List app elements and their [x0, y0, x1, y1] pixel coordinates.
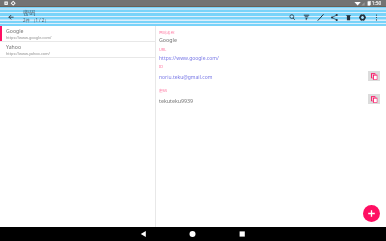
staticText: https://www.yahoo.com/: [6, 51, 51, 56]
button[interactable]: Copy: [368, 94, 380, 104]
button[interactable]: Filter: [299, 10, 313, 24]
staticText: URL: [159, 47, 167, 52]
staticText: Google: [6, 27, 24, 34]
button[interactable]: Edit: [313, 10, 327, 24]
button[interactable]: Google: [0, 26, 155, 42]
staticText: Yahoo: [6, 43, 22, 50]
staticText: 11:50: [369, 0, 382, 7]
staticText: ID: [159, 64, 164, 69]
button[interactable]: Delete: [341, 10, 355, 24]
staticText: Google: [159, 36, 177, 43]
staticText: 密码: [159, 88, 167, 93]
button[interactable]: Yahoo: [0, 42, 155, 58]
button[interactable]: Share: [327, 10, 341, 24]
button[interactable]: Search: [285, 10, 299, 24]
staticText: noriu.teku@gmail.com: [159, 74, 213, 81]
button[interactable]: Back: [0, 7, 21, 26]
staticText: https://www.google.com/: [6, 35, 52, 40]
staticText: 2件 （1 / 2）: [23, 17, 49, 23]
staticText: https://www.google.com/: [159, 55, 219, 62]
staticText: 网站名称: [159, 30, 175, 35]
button[interactable]: Settings: [355, 10, 369, 24]
staticText: 密码: [23, 9, 36, 17]
button[interactable]: More options: [369, 10, 383, 24]
staticText: tekuteku9939: [159, 97, 194, 104]
button[interactable]: Copy: [368, 71, 380, 81]
button[interactable]: Add: [363, 205, 380, 222]
